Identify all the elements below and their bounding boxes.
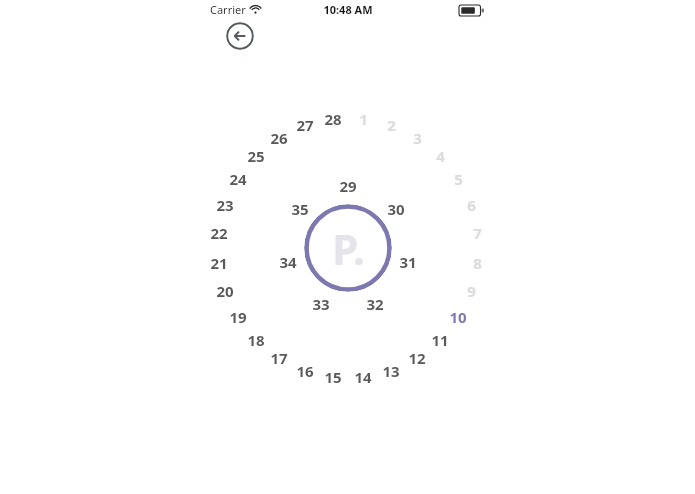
- staticText: 33: [312, 294, 330, 314]
- button[interactable]: 4: [423, 145, 457, 167]
- staticText: 13: [382, 361, 400, 381]
- staticText: 30: [387, 199, 405, 219]
- staticText: Carrier: [210, 2, 246, 17]
- staticText: 4: [436, 146, 445, 166]
- staticText: 7: [473, 223, 482, 243]
- staticText: 22: [210, 223, 228, 243]
- staticText: 3: [413, 128, 422, 148]
- staticText: 31: [399, 252, 417, 272]
- button[interactable]: 19: [221, 306, 255, 328]
- staticText: 6: [467, 195, 476, 215]
- staticText: 32: [366, 294, 384, 314]
- staticText: 19: [229, 307, 247, 327]
- button[interactable]: 5: [441, 168, 475, 190]
- staticText: 23: [216, 195, 234, 215]
- button[interactable]: 25: [239, 145, 273, 167]
- staticText: 1: [359, 109, 368, 129]
- staticText: 12: [408, 348, 426, 368]
- staticText: 18: [247, 330, 265, 350]
- staticText: 14: [354, 367, 372, 387]
- staticText: 20: [216, 281, 234, 301]
- button[interactable]: 30: [379, 198, 413, 220]
- button[interactable]: 16: [288, 360, 322, 382]
- button[interactable]: 1: [346, 108, 380, 130]
- staticText: 29: [339, 176, 357, 196]
- button[interactable]: 24: [221, 168, 255, 190]
- staticText: 5: [454, 169, 463, 189]
- button[interactable]: Back: [226, 22, 254, 50]
- button[interactable]: 11: [423, 329, 457, 351]
- staticText: 10:48 AM: [323, 2, 373, 17]
- staticText: 28: [324, 109, 342, 129]
- button[interactable]: 3: [400, 127, 434, 149]
- button[interactable]: 17: [262, 347, 296, 369]
- staticText: 34: [279, 252, 297, 272]
- button[interactable]: 18: [239, 329, 273, 351]
- staticText: 35: [291, 199, 309, 219]
- button[interactable]: Parking: [304, 204, 392, 292]
- button[interactable]: 20: [208, 280, 242, 302]
- button[interactable]: 21: [202, 252, 236, 274]
- button[interactable]: 2: [374, 114, 408, 136]
- button[interactable]: 34: [271, 251, 305, 273]
- staticText: 21: [210, 253, 228, 273]
- button[interactable]: 13: [374, 360, 408, 382]
- button[interactable]: 6: [454, 194, 488, 216]
- staticText: 24: [229, 169, 247, 189]
- button[interactable]: 15: [316, 366, 350, 388]
- staticText: 27: [296, 115, 314, 135]
- button[interactable]: 29: [331, 175, 365, 197]
- button[interactable]: 35: [283, 198, 317, 220]
- button[interactable]: 7: [460, 222, 494, 244]
- button[interactable]: 10: [441, 306, 475, 328]
- staticText: 8: [473, 253, 482, 273]
- button[interactable]: 33: [304, 293, 338, 315]
- staticText: 16: [296, 361, 314, 381]
- button[interactable]: 22: [202, 222, 236, 244]
- button[interactable]: 9: [454, 280, 488, 302]
- button[interactable]: 31: [391, 251, 425, 273]
- staticText: 26: [270, 128, 288, 148]
- staticText: 9: [467, 281, 476, 301]
- staticText: 25: [247, 146, 265, 166]
- staticText: 2: [387, 115, 396, 135]
- button[interactable]: 14: [346, 366, 380, 388]
- staticText: 15: [324, 367, 342, 387]
- button[interactable]: 27: [288, 114, 322, 136]
- button[interactable]: 32: [358, 293, 392, 315]
- button[interactable]: 8: [460, 252, 494, 274]
- staticText: 17: [270, 348, 288, 368]
- staticText: 11: [431, 330, 449, 350]
- button[interactable]: 26: [262, 127, 296, 149]
- button[interactable]: 12: [400, 347, 434, 369]
- button[interactable]: 23: [208, 194, 242, 216]
- button[interactable]: 28: [316, 108, 350, 130]
- staticText: P.: [332, 220, 365, 277]
- staticText: 10: [449, 307, 467, 327]
